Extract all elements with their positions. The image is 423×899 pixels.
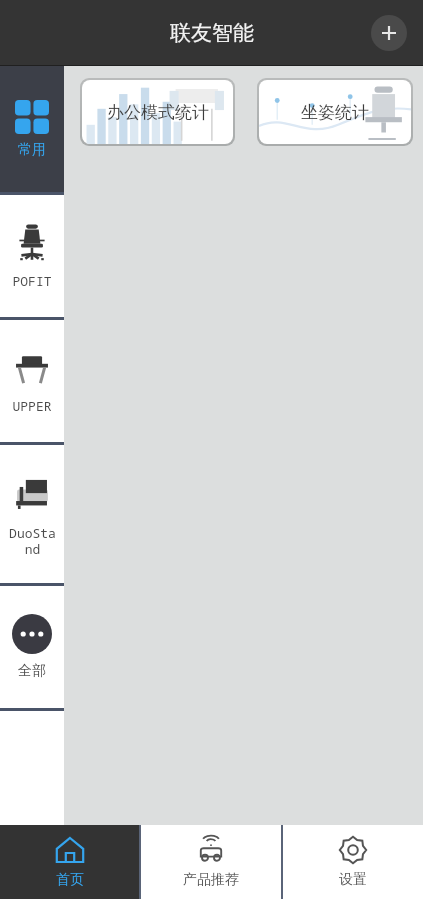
button[interactable]: 产品推荐 [141, 825, 281, 899]
button[interactable]: 首页 [0, 825, 139, 899]
button[interactable]: 设置 [283, 825, 423, 899]
staticText: 办公模式统计 [107, 102, 209, 123]
button[interactable]: 全部 [0, 586, 64, 708]
button[interactable]: 常用 [0, 66, 64, 192]
staticText: 设置 [339, 871, 367, 889]
staticText: 全部 [18, 662, 46, 680]
button[interactable]: DuoSta nd [0, 445, 64, 583]
button[interactable]: UPPER [0, 320, 64, 442]
staticText: 首页 [56, 871, 84, 889]
staticText: UPPER [12, 397, 52, 415]
staticText: POFIT [12, 272, 52, 290]
button[interactable]: Add [371, 15, 407, 51]
staticText: 联友智能 [170, 20, 254, 46]
staticText: DuoSta nd [9, 524, 56, 557]
button[interactable]: POFIT [0, 195, 64, 317]
button[interactable]: 办公模式统计 [82, 80, 233, 144]
staticText: 产品推荐 [183, 871, 239, 889]
staticText: 常用 [18, 141, 46, 159]
staticText: 坐姿统计 [301, 102, 369, 123]
button[interactable]: 坐姿统计 [259, 80, 411, 144]
